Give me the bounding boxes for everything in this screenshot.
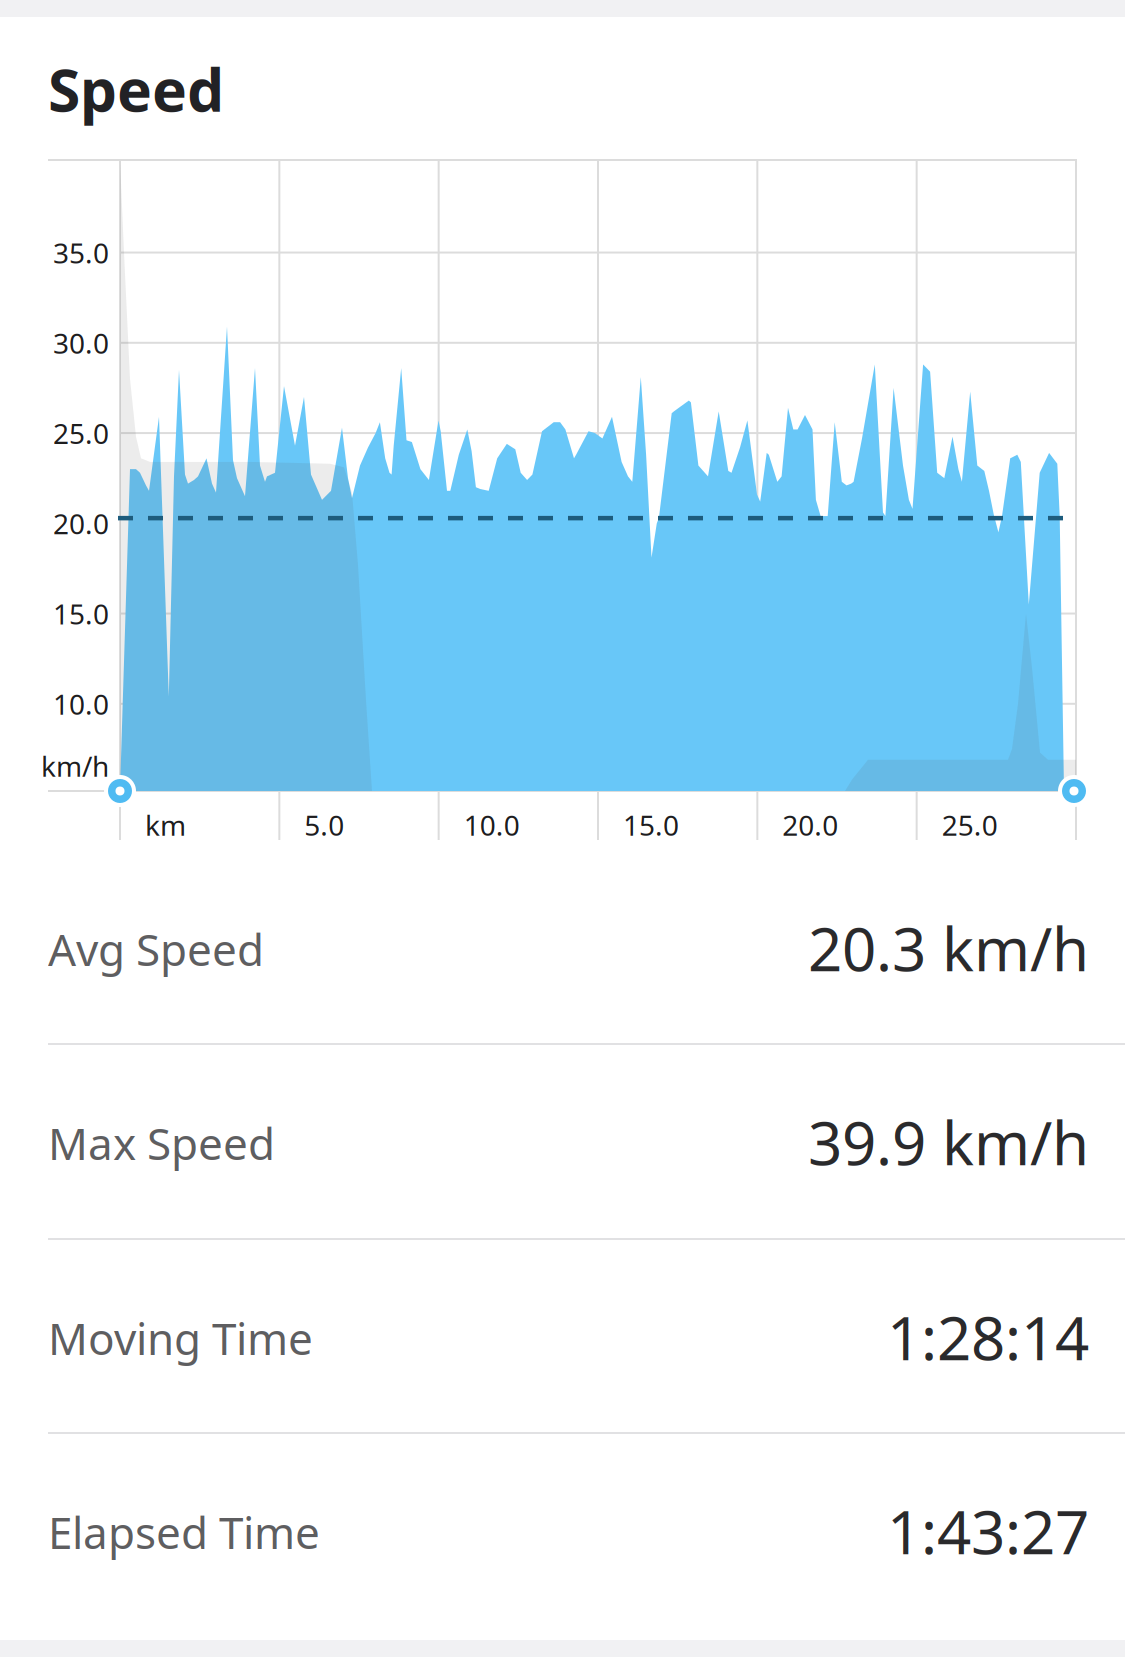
staticText: 20.3 km/h: [808, 908, 1089, 988]
staticText: 25.0: [53, 414, 109, 452]
button[interactable]: Moving Time: [0, 1239, 1125, 1433]
button[interactable]: Range end: [1058, 775, 1090, 807]
staticText: 1:43:27: [887, 1491, 1089, 1571]
staticText: 35.0: [53, 234, 109, 271]
staticText: Elapsed Time: [48, 1503, 320, 1561]
staticText: 25.0: [942, 806, 998, 844]
staticText: 30.0: [53, 324, 109, 361]
staticText: Moving Time: [48, 1309, 313, 1367]
staticText: 39.9 km/h: [808, 1102, 1089, 1182]
staticText: 5.0: [304, 806, 344, 844]
button[interactable]: Avg Speed: [0, 850, 1125, 1044]
staticText: km: [145, 806, 186, 844]
staticText: km/h: [41, 747, 109, 785]
staticText: 10.0: [464, 806, 520, 844]
staticText: 1:28:14: [887, 1297, 1089, 1377]
staticText: 10.0: [53, 685, 109, 722]
staticText: Avg Speed: [48, 920, 264, 978]
button[interactable]: Elapsed Time: [0, 1433, 1125, 1627]
staticText: Max Speed: [48, 1114, 275, 1172]
button[interactable]: Max Speed: [0, 1044, 1125, 1238]
staticText: 15.0: [623, 806, 679, 844]
button[interactable]: Range start: [104, 775, 136, 807]
staticText: 20.0: [53, 505, 109, 542]
staticText: Speed: [48, 50, 224, 128]
staticText: 20.0: [782, 806, 838, 844]
staticText: 15.0: [53, 595, 109, 632]
